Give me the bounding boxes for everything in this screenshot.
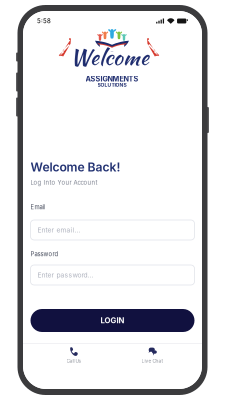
staticText: Enter password...: [37, 271, 93, 279]
staticText: Live Chat: [141, 358, 163, 364]
staticText: Call Us: [66, 358, 80, 364]
staticText: LOGIN: [100, 316, 124, 325]
button[interactable]: Live Chat: [126, 341, 178, 392]
staticText: Enter email...: [37, 226, 80, 234]
staticText: Log Into Your Account: [30, 179, 97, 186]
button[interactable]: Enter email...: [30, 220, 194, 240]
button[interactable]: LOGIN: [30, 309, 194, 332]
button[interactable]: Call Us: [47, 341, 99, 392]
button[interactable]: Enter password...: [30, 265, 194, 285]
staticText: Welcome: [70, 41, 149, 73]
staticText: Welcome Back!: [30, 160, 120, 174]
staticText: SOLUTIONS: [97, 82, 126, 88]
staticText: Password: [30, 250, 58, 258]
staticText: 5:58: [37, 17, 51, 25]
staticText: ASSIGNMENTS: [85, 75, 138, 83]
staticText: Email: [30, 203, 44, 211]
